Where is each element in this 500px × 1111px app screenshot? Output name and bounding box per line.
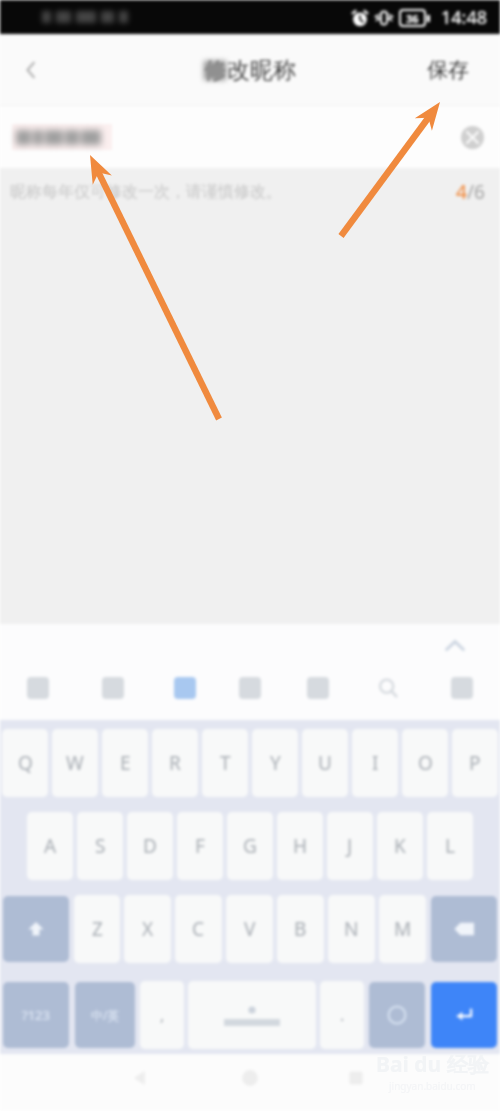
staticText: R [169, 750, 181, 776]
staticText: X [142, 916, 154, 942]
button[interactable]: Z [74, 895, 120, 963]
button[interactable]: Keyboard tool 5 [296, 666, 340, 710]
button[interactable]: T [202, 729, 248, 797]
button[interactable]: Keyboard tool 6 [366, 666, 410, 710]
staticText: G [243, 833, 257, 859]
staticText: P [469, 750, 481, 776]
staticText: ?123 [22, 1006, 50, 1024]
staticText: 中/英 [91, 1007, 120, 1023]
button[interactable]: L [427, 812, 473, 880]
staticText: S [95, 833, 106, 859]
button[interactable]: Backspace [431, 896, 497, 962]
staticText: 保存 [427, 57, 469, 83]
button[interactable]: C [175, 895, 222, 963]
button[interactable]: Shift [3, 896, 69, 962]
staticText: U [318, 750, 332, 776]
staticText: Q [18, 750, 33, 776]
staticText: /6 [467, 179, 485, 205]
staticText: K [394, 833, 406, 859]
staticText: Z [92, 916, 103, 942]
staticText: 4 [456, 179, 467, 205]
button[interactable]: E [102, 729, 148, 797]
button[interactable]: S [77, 812, 123, 880]
staticText: L [445, 833, 455, 859]
button[interactable]: U [302, 729, 348, 797]
button[interactable]: Q [2, 729, 48, 797]
button[interactable]: P [452, 729, 498, 797]
staticText: W [66, 750, 84, 776]
button[interactable]: Back [0, 34, 62, 106]
button[interactable]: X [124, 895, 171, 963]
staticText: 昵称每年仅可修改一次，请谨慎修改。 [10, 182, 282, 202]
button[interactable]: D [127, 812, 173, 880]
staticText: I [372, 750, 379, 776]
button[interactable]: Keyboard tool 2 [91, 666, 135, 710]
button[interactable]: Home [226, 1054, 274, 1102]
button[interactable]: Y [252, 729, 298, 797]
button[interactable]: F [177, 812, 223, 880]
staticText: 36 [406, 11, 419, 26]
staticText: C [192, 916, 205, 942]
button[interactable]: H [277, 812, 323, 880]
button[interactable]: Emoji [369, 982, 425, 1048]
staticText: E [120, 750, 131, 776]
button[interactable]: 保存 [396, 34, 500, 106]
button[interactable]: Switch language [75, 982, 135, 1048]
button[interactable]: K [377, 812, 423, 880]
button[interactable] [188, 981, 316, 1049]
button[interactable]: B [277, 895, 324, 963]
staticText: 修改昵称 [204, 56, 296, 85]
staticText: Bai du 经验 [376, 1050, 489, 1079]
staticText: M [394, 916, 412, 942]
button[interactable]: R [152, 729, 198, 797]
button[interactable]: Hide keyboard [434, 625, 476, 667]
staticText: H [293, 833, 308, 859]
button[interactable]: A [27, 812, 73, 880]
button[interactable]: N [328, 895, 375, 963]
button[interactable]: J [327, 812, 373, 880]
staticText: V [244, 916, 256, 942]
button[interactable]: V [226, 895, 273, 963]
button[interactable]: Symbols [3, 982, 69, 1048]
button[interactable]: Clear text [452, 117, 492, 157]
button[interactable]: G [227, 812, 273, 880]
staticText: F [195, 833, 205, 859]
staticText: N [344, 916, 359, 942]
staticText: D [143, 833, 157, 859]
staticText: J [347, 833, 353, 859]
button[interactable]: M [379, 895, 426, 963]
staticText: O [418, 750, 433, 776]
button[interactable]: Keyboard tool 7 [440, 666, 484, 710]
button[interactable]: Enter [431, 982, 497, 1048]
button[interactable]: I [352, 729, 398, 797]
button[interactable]: Recents [332, 1054, 380, 1102]
button[interactable]: O [402, 729, 448, 797]
staticText: , [160, 1004, 165, 1026]
button[interactable]: Keyboard tool 4 [228, 666, 272, 710]
staticText: T [220, 750, 231, 776]
staticText: . [340, 1004, 345, 1026]
button[interactable]: Keyboard tool 1 [16, 666, 60, 710]
staticText: B [294, 916, 307, 942]
staticText: Y [270, 750, 281, 776]
button[interactable]: Keyboard tool 3 [163, 666, 207, 710]
staticText: A [44, 833, 57, 859]
button[interactable]: W [52, 729, 98, 797]
staticText: 14:48 [441, 5, 488, 30]
